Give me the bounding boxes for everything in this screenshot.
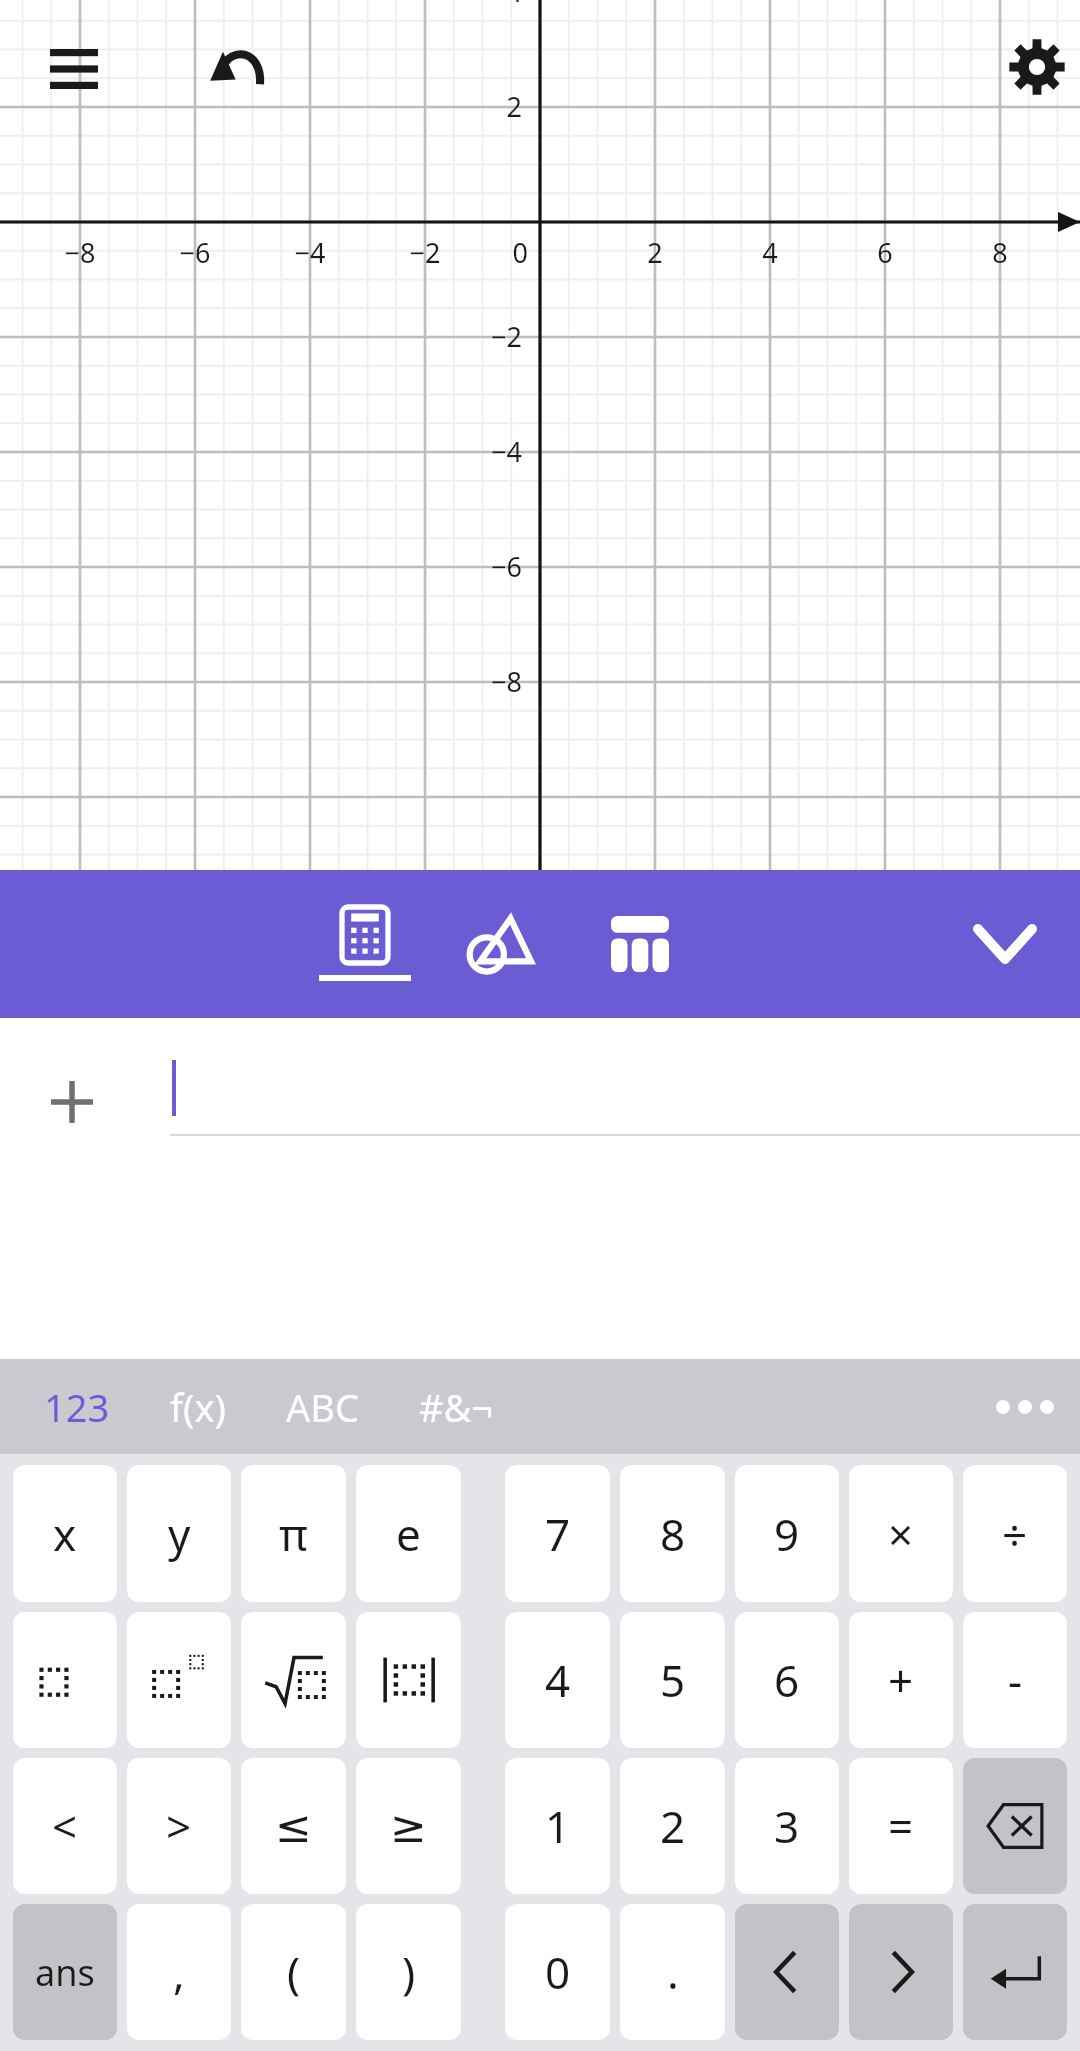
button[interactable]: 0 bbox=[505, 1904, 610, 2040]
staticText: 5 bbox=[660, 1650, 686, 1710]
button[interactable]: ( bbox=[241, 1904, 346, 2040]
button[interactable]: 8 bbox=[620, 1465, 725, 1602]
button[interactable]: ans bbox=[13, 1904, 117, 2040]
staticText: −4 bbox=[462, 433, 522, 470]
staticText: x bbox=[53, 1504, 77, 1564]
staticText: −6 bbox=[462, 548, 522, 585]
staticText: > bbox=[166, 1796, 192, 1856]
button[interactable]: ) bbox=[356, 1904, 461, 2040]
button[interactable]: π bbox=[241, 1465, 346, 1602]
staticText: 1 bbox=[545, 1796, 571, 1856]
button[interactable]: Add expression bbox=[40, 1070, 104, 1134]
staticText: 3 bbox=[774, 1796, 800, 1856]
button[interactable]: 9 bbox=[735, 1465, 839, 1602]
button[interactable]: . bbox=[620, 1904, 725, 2040]
staticText: - bbox=[1008, 1650, 1023, 1710]
staticText: 4 bbox=[740, 234, 800, 271]
staticText: 2 bbox=[462, 88, 522, 125]
staticText: + bbox=[888, 1650, 914, 1710]
button[interactable]: Square bbox=[13, 1612, 117, 1748]
button[interactable]: 3 bbox=[735, 1758, 839, 1894]
button[interactable]: = bbox=[849, 1758, 953, 1894]
staticText: ≥ bbox=[390, 1801, 427, 1852]
staticText: 8 bbox=[660, 1504, 686, 1564]
button[interactable]: 7 bbox=[505, 1465, 610, 1602]
staticText: ) bbox=[402, 1942, 416, 2002]
staticText: 2 bbox=[625, 234, 685, 271]
button[interactable]: 1 bbox=[505, 1758, 610, 1894]
staticText: 6 bbox=[855, 234, 915, 271]
button[interactable]: Settings bbox=[994, 24, 1080, 110]
button[interactable]: - bbox=[963, 1612, 1067, 1748]
staticText: −4 bbox=[280, 234, 340, 271]
button[interactable]: 4 bbox=[505, 1612, 610, 1748]
staticText: 0 bbox=[545, 1942, 571, 2002]
staticText: #&¬ bbox=[419, 1381, 494, 1433]
staticText: 4 bbox=[462, 0, 522, 10]
button[interactable]: × bbox=[849, 1465, 953, 1602]
staticText: ≤ bbox=[275, 1801, 312, 1852]
staticText: 123 bbox=[44, 1381, 110, 1433]
staticText: 6 bbox=[774, 1650, 800, 1710]
staticText: 4 bbox=[545, 1650, 571, 1710]
button[interactable]: Geometry bbox=[430, 870, 570, 1018]
button[interactable]: Enter bbox=[963, 1904, 1067, 2040]
button[interactable]: Undo bbox=[196, 26, 280, 110]
button[interactable]: Power bbox=[127, 1612, 231, 1748]
staticText: y bbox=[168, 1504, 191, 1564]
button[interactable]: > bbox=[127, 1758, 231, 1894]
staticText: e bbox=[396, 1504, 421, 1564]
staticText: ( bbox=[287, 1942, 301, 2002]
button[interactable]: f(x) bbox=[170, 1381, 226, 1433]
button[interactable]: < bbox=[13, 1758, 117, 1894]
button[interactable]: #&¬ bbox=[419, 1381, 494, 1433]
staticText: = bbox=[888, 1796, 914, 1856]
staticText: π bbox=[279, 1504, 308, 1564]
button[interactable]: Collapse bbox=[930, 870, 1080, 1018]
staticText: ÷ bbox=[1002, 1504, 1028, 1564]
staticText: 2 bbox=[660, 1796, 686, 1856]
button[interactable]: Calculator bbox=[300, 870, 430, 1018]
staticText: −8 bbox=[50, 234, 110, 271]
button[interactable]: y bbox=[127, 1465, 231, 1602]
staticText: 8 bbox=[970, 234, 1030, 271]
button[interactable]: ≥ bbox=[356, 1758, 461, 1894]
staticText: , bbox=[173, 1942, 185, 2002]
button[interactable]: More bbox=[970, 1359, 1080, 1454]
button[interactable]: Absolute value bbox=[356, 1612, 461, 1748]
staticText: ans bbox=[35, 1948, 95, 1997]
staticText: < bbox=[52, 1796, 78, 1856]
button[interactable]: Menu bbox=[35, 30, 113, 108]
button[interactable]: 6 bbox=[735, 1612, 839, 1748]
button[interactable]: Left bbox=[735, 1904, 839, 2040]
button[interactable]: 2 bbox=[620, 1758, 725, 1894]
staticText: f(x) bbox=[170, 1381, 226, 1433]
button[interactable]: ≤ bbox=[241, 1758, 346, 1894]
button[interactable]: Right bbox=[849, 1904, 953, 2040]
staticText: −6 bbox=[165, 234, 225, 271]
staticText: −8 bbox=[462, 663, 522, 700]
staticText: . bbox=[667, 1942, 679, 2002]
button[interactable]: Backspace bbox=[963, 1758, 1067, 1894]
staticText: 9 bbox=[774, 1504, 800, 1564]
button[interactable]: + bbox=[849, 1612, 953, 1748]
button[interactable]: 123 bbox=[44, 1381, 110, 1433]
button[interactable]: Square root bbox=[241, 1612, 346, 1748]
button[interactable]: x bbox=[13, 1465, 117, 1602]
button[interactable]: ÷ bbox=[963, 1465, 1067, 1602]
button[interactable]: , bbox=[127, 1904, 231, 2040]
button[interactable]: Table bbox=[570, 870, 710, 1018]
staticText: 0 bbox=[480, 234, 528, 271]
staticText: × bbox=[888, 1504, 914, 1564]
staticText: −2 bbox=[462, 318, 522, 355]
button[interactable]: ABC bbox=[286, 1381, 359, 1433]
button[interactable]: 5 bbox=[620, 1612, 725, 1748]
staticText: ABC bbox=[286, 1381, 359, 1433]
staticText: 7 bbox=[545, 1504, 571, 1564]
button[interactable]: e bbox=[356, 1465, 461, 1602]
staticText: −2 bbox=[395, 234, 455, 271]
